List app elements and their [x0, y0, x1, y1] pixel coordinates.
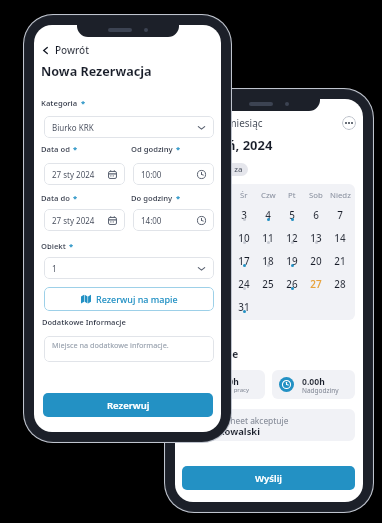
staticText: Styczeń, 2024 [186, 136, 273, 154]
staticText: Twój timesheet akceptuje [188, 415, 289, 426]
button[interactable]: Powrót [39, 41, 92, 59]
staticText: 15 [191, 254, 203, 267]
staticText: Wybierz miesiąc [187, 116, 263, 130]
button[interactable]: 0.00h [182, 370, 265, 399]
button[interactable]: 27 sty 2024 [44, 209, 125, 231]
staticText: Czw [261, 190, 276, 201]
staticText: Obiekt [41, 241, 66, 251]
staticText: 6 [313, 208, 319, 221]
button[interactable]: Miejsce na dodatkowe informacje. [44, 336, 214, 362]
staticText: Jan Kowalski [201, 425, 261, 438]
staticText: 1 [52, 263, 197, 274]
button[interactable]: Rezerwuj na mapie [44, 287, 214, 311]
staticText: Biurko KRK [52, 122, 197, 133]
staticText: 0.00h [216, 376, 239, 388]
button[interactable]: Praca zdalna za [184, 163, 248, 176]
button[interactable]: 0.00h [272, 370, 355, 399]
staticText: 16 [214, 254, 226, 267]
staticText: 24 [238, 277, 250, 290]
staticText: 25 [262, 277, 274, 290]
staticText: * [81, 98, 86, 108]
staticText: 12 [286, 231, 298, 244]
staticText: 20 [310, 254, 322, 267]
staticText: 0.00h [302, 376, 325, 388]
staticText: 2 [217, 208, 223, 221]
staticText: 10 [238, 231, 250, 244]
button[interactable]: Wyślij [182, 466, 355, 490]
staticText: Wt [215, 190, 226, 201]
staticText: 3 [241, 208, 247, 221]
staticText: 5 [289, 208, 295, 221]
staticText: Miejsce na dodatkowe informacje. [52, 340, 206, 350]
staticText: 26 [286, 277, 298, 290]
staticText: Kategoria [41, 98, 78, 108]
staticText: 22 [191, 277, 203, 290]
button[interactable]: More options [342, 116, 356, 130]
staticText: 17 [238, 254, 250, 267]
staticText: 29 [191, 300, 203, 313]
button[interactable]: Biurko KRK [44, 116, 214, 138]
staticText: 7 [337, 208, 343, 221]
staticText: Dodatkowe Informacje [42, 317, 126, 327]
staticText: * [73, 144, 78, 154]
staticText: Do godziny [131, 193, 173, 203]
staticText: Śr [240, 190, 248, 201]
staticText: Podsumowanie [175, 347, 239, 361]
button[interactable]: 10:00 [133, 163, 214, 185]
staticText: Nadgodziny [302, 386, 339, 395]
staticText: Powrót [55, 43, 90, 57]
button[interactable]: 1 [44, 257, 214, 279]
button[interactable]: Rezerwuj [43, 393, 213, 417]
staticText: 27 [310, 277, 322, 290]
staticText: 31 [238, 300, 250, 313]
staticText: 30 [214, 300, 226, 313]
staticText: Niedz [330, 190, 351, 201]
staticText: * [176, 193, 181, 203]
staticText: 27 sty 2024 [52, 215, 108, 226]
staticText: Godz. pracy [216, 386, 250, 394]
staticText: Data od [41, 144, 70, 154]
button[interactable]: 27 sty 2024 [44, 163, 125, 185]
staticText: Od godziny [131, 144, 173, 154]
staticText: 11 [262, 231, 274, 244]
staticText: 19 [286, 254, 298, 267]
staticText: Rezerwuj na mapie [96, 293, 178, 305]
staticText: 28 [334, 277, 346, 290]
staticText: 23 [214, 277, 226, 290]
staticText: 9 [217, 231, 223, 244]
staticText: Praca zdalna za [185, 164, 243, 175]
staticText: 4 [265, 208, 271, 221]
staticText: 18 [262, 254, 274, 267]
button[interactable]: 14:00 [133, 209, 214, 231]
staticText: 13 [310, 231, 322, 244]
staticText: Pt [288, 190, 296, 201]
staticText: 21 [334, 254, 346, 267]
staticText: Nowa Rezerwacja [41, 63, 152, 80]
staticText: Rezerwuj [107, 399, 150, 412]
staticText: 14:00 [141, 215, 197, 226]
staticText: 27 sty 2024 [52, 169, 108, 180]
staticText: Sob [309, 190, 323, 201]
staticText: 14 [334, 231, 346, 244]
staticText: 10:00 [141, 169, 197, 180]
staticText: * [176, 144, 181, 154]
staticText: Data do [41, 193, 70, 203]
button[interactable]: Twój timesheet akceptuje [182, 409, 355, 441]
staticText: Wyślij [255, 472, 283, 485]
staticText: 1 [194, 208, 200, 221]
staticText: * [69, 241, 74, 251]
staticText: * [73, 193, 78, 203]
